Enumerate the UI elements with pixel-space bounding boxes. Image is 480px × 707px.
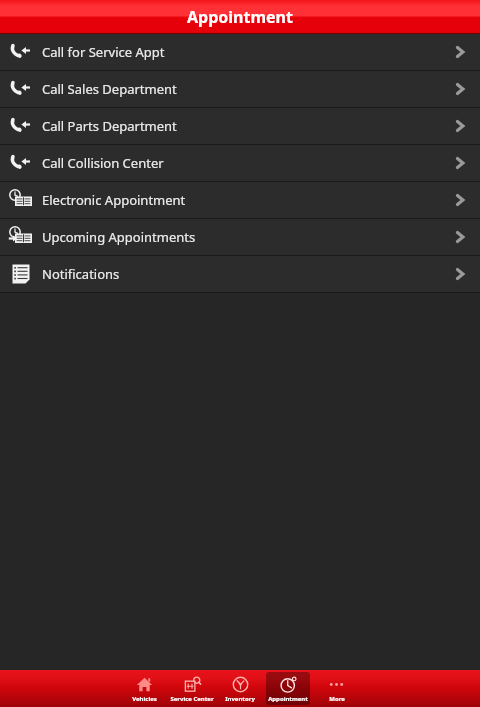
staticText: Call for Service Appt [42,43,452,61]
button[interactable]: Notifications [0,256,480,292]
button[interactable]: Electronic Appointment [0,182,480,218]
button[interactable]: Service Center [168,670,216,707]
button[interactable]: Upcoming Appointments [0,219,480,255]
button[interactable]: Call Parts Department [0,108,480,144]
button[interactable]: Call for Service Appt [0,34,480,70]
button[interactable]: Inventory [223,670,257,707]
staticText: Call Collision Center [42,154,452,172]
staticText: Call Parts Department [42,117,452,135]
button[interactable]: Appointment [266,672,310,705]
staticText: Call Sales Department [42,80,452,98]
staticText: Appointment [187,6,293,28]
button[interactable]: Vehicles [130,670,159,707]
staticText: Notifications [42,265,452,283]
staticText: Vehicles [132,695,157,703]
staticText: More [329,695,345,703]
button[interactable]: Call Collision Center [0,145,480,181]
staticText: Upcoming Appointments [42,228,452,246]
button[interactable]: Call Sales Department [0,71,480,107]
staticText: Electronic Appointment [42,191,452,209]
button[interactable]: More [325,670,348,707]
staticText: Service Center [170,695,214,703]
staticText: Inventory [225,695,255,703]
staticText: Appointment [268,695,308,703]
